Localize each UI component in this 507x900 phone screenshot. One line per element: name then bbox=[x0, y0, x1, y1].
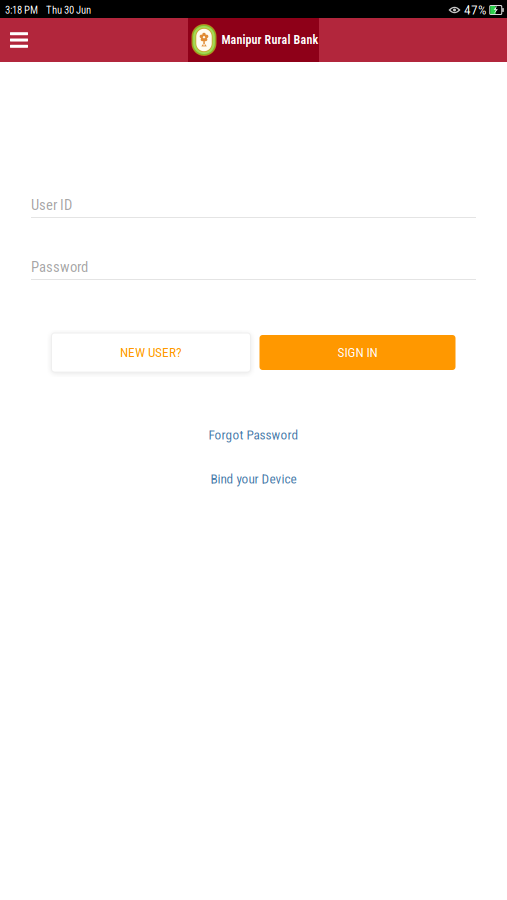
button[interactable]: NEW USER? bbox=[51, 333, 250, 372]
staticText: Forgot Password bbox=[208, 427, 298, 443]
staticText: Bind your Device bbox=[210, 471, 296, 487]
staticText: User ID bbox=[31, 196, 72, 214]
button[interactable]: Menu bbox=[0, 18, 38, 62]
staticText: Manipur Rural Bank bbox=[221, 33, 318, 47]
button[interactable]: Forgot Password bbox=[0, 425, 507, 445]
staticText: NEW USER? bbox=[120, 345, 182, 360]
button[interactable]: SIGN IN bbox=[259, 335, 455, 370]
staticText: 47% bbox=[464, 2, 486, 18]
staticText: SIGN IN bbox=[337, 345, 377, 360]
staticText: Thu 30 Jun bbox=[46, 4, 91, 16]
button[interactable]: Bind your Device bbox=[0, 469, 507, 489]
staticText: Password bbox=[31, 258, 88, 276]
staticText: 3:18 PM bbox=[5, 4, 38, 16]
